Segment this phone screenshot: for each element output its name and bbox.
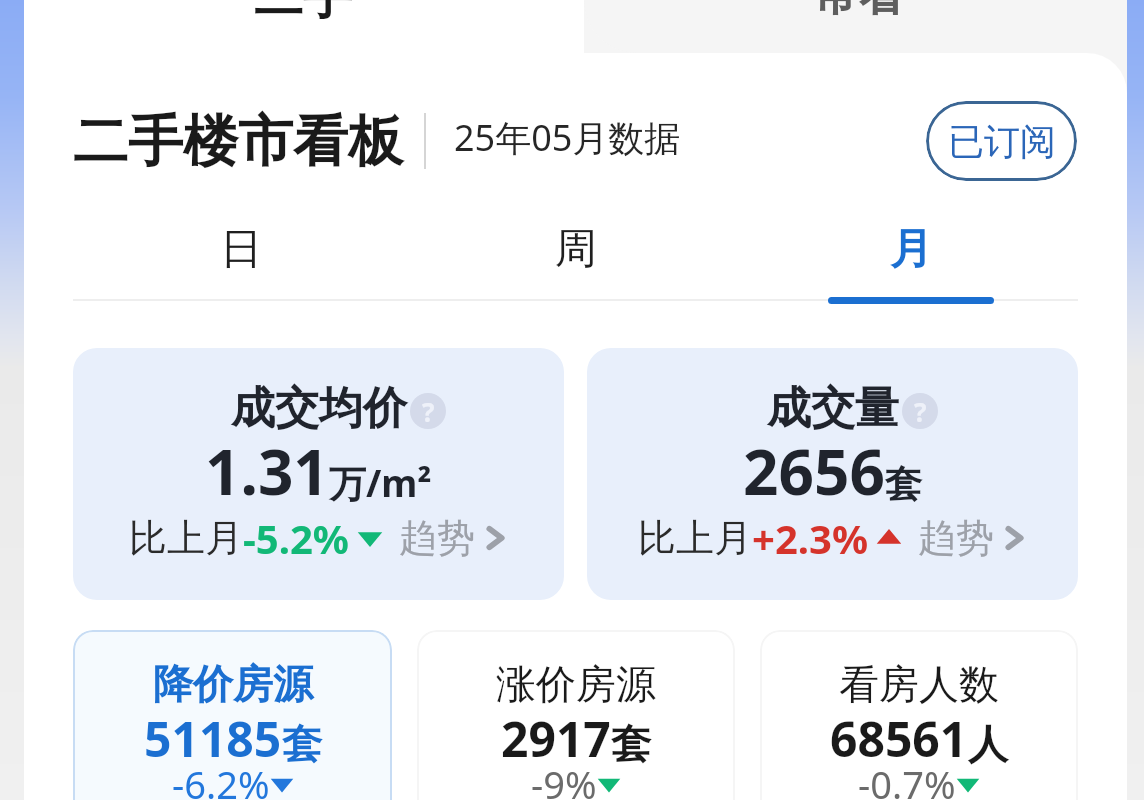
button[interactable]: 周 xyxy=(408,208,743,304)
staticText: 51185 xyxy=(144,706,282,771)
button[interactable]: 看房人数 xyxy=(760,630,1078,800)
staticText: -0.7% xyxy=(858,758,956,800)
staticText: 比上月 xyxy=(638,514,752,562)
button[interactable]: Help xyxy=(410,393,446,429)
staticText: 二手 xyxy=(254,0,352,19)
staticText: 比上月 xyxy=(129,514,243,562)
staticText: 套 xyxy=(885,461,922,508)
button[interactable]: 成交均价 xyxy=(73,348,564,600)
button[interactable]: Help xyxy=(902,393,938,429)
staticText: 趋势 xyxy=(918,514,994,562)
staticText: +2.3% xyxy=(752,511,868,565)
staticText: 1.31 xyxy=(205,429,329,513)
staticText: 二手楼市看板 xyxy=(73,107,403,176)
staticText: 万/m² xyxy=(329,457,432,508)
staticText: 已订阅 xyxy=(948,119,1056,164)
button[interactable]: 月 xyxy=(743,208,1078,304)
staticText: 68561 xyxy=(830,706,968,771)
button[interactable]: 二手 xyxy=(24,0,576,53)
staticText: 套 xyxy=(282,719,322,769)
button[interactable]: 成交量 xyxy=(587,348,1078,600)
staticText: -6.2% xyxy=(172,758,270,800)
staticText: 趋势 xyxy=(399,514,475,562)
button[interactable]: 常看 xyxy=(584,0,1127,53)
button[interactable]: 涨价房源 xyxy=(417,630,735,800)
staticText: ? xyxy=(422,394,435,429)
button[interactable]: 已订阅 xyxy=(926,101,1077,181)
staticText: 降价房源 xyxy=(153,659,313,709)
button[interactable]: 日 xyxy=(73,208,408,304)
staticText: 看房人数 xyxy=(839,659,999,709)
staticText: 涨价房源 xyxy=(496,659,656,709)
staticText: -5.2% xyxy=(243,511,349,565)
staticText: 人 xyxy=(968,719,1008,769)
staticText: -9% xyxy=(531,758,597,800)
staticText: ? xyxy=(914,394,927,429)
staticText: 日 xyxy=(220,223,262,276)
button[interactable]: 降价房源 xyxy=(73,630,392,800)
staticText: 常看 xyxy=(813,0,905,19)
staticText: 周 xyxy=(555,223,597,276)
staticText: 2656 xyxy=(743,429,885,513)
staticText: 成交量 xyxy=(767,381,899,436)
staticText: 2917 xyxy=(501,706,611,771)
staticText: 月 xyxy=(890,223,932,276)
staticText: 成交均价 xyxy=(231,381,407,436)
staticText: 25年05月数据 xyxy=(454,113,681,162)
staticText: 套 xyxy=(611,719,651,769)
